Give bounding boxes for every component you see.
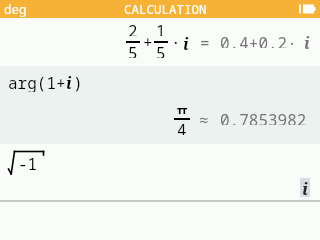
staticText: arg(1+ bbox=[8, 72, 66, 92]
staticText: π bbox=[176, 98, 188, 114]
button[interactable] bbox=[300, 178, 310, 197]
staticText: deg bbox=[4, 1, 27, 18]
staticText: 5 bbox=[128, 42, 138, 58]
staticText: i bbox=[304, 32, 310, 50]
button[interactable] bbox=[0, 144, 320, 200]
staticText: 0.7853982 bbox=[220, 109, 307, 125]
staticText: i bbox=[302, 177, 309, 196]
staticText: CALCULATION bbox=[124, 1, 207, 18]
staticText: 0.4+0.2· bbox=[220, 32, 297, 48]
staticText: -1 bbox=[18, 153, 38, 171]
staticText: 4 bbox=[177, 119, 187, 135]
button[interactable] bbox=[0, 18, 320, 66]
staticText: = bbox=[200, 32, 210, 48]
staticText: · bbox=[171, 31, 181, 47]
staticText: i bbox=[183, 33, 189, 51]
staticText: i bbox=[66, 72, 72, 92]
staticText: ) bbox=[73, 72, 83, 92]
button[interactable] bbox=[0, 66, 320, 144]
staticText: 5 bbox=[156, 42, 166, 58]
button[interactable] bbox=[0, 0, 320, 18]
staticText: 2 bbox=[128, 20, 138, 36]
staticText: 1 bbox=[156, 20, 166, 36]
staticText: + bbox=[143, 31, 153, 47]
staticText: ≈ bbox=[199, 109, 209, 125]
